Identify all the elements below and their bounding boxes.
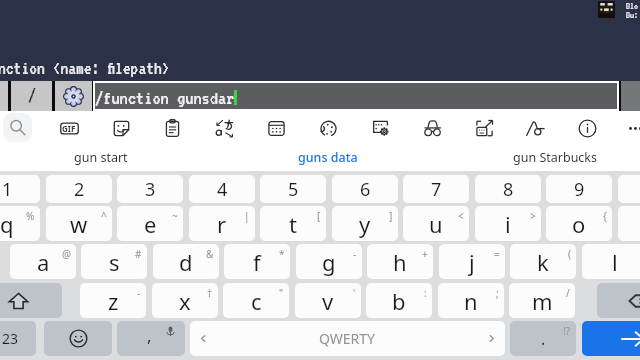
button[interactable]: Info <box>572 113 602 143</box>
button[interactable]: d <box>153 244 219 279</box>
button[interactable]: Translate <box>209 113 239 143</box>
button[interactable]: / <box>11 81 52 111</box>
button[interactable]: f <box>224 244 290 279</box>
button[interactable]: 4 <box>189 175 255 203</box>
button[interactable]: j <box>439 244 505 279</box>
button[interactable]: Settings <box>365 113 395 143</box>
staticText: s <box>109 247 120 277</box>
button[interactable]: o <box>546 206 612 241</box>
button[interactable]: Stickers <box>106 113 136 143</box>
button[interactable]: 2 <box>46 175 112 203</box>
staticText: , <box>147 324 152 347</box>
staticText: k <box>537 247 549 277</box>
button[interactable]: s <box>81 244 147 279</box>
staticText: u <box>429 209 443 239</box>
button[interactable]: Clipboard <box>157 113 187 143</box>
staticText: t <box>289 209 297 239</box>
button[interactable]: Shift <box>0 283 62 318</box>
button[interactable]: Emoji <box>44 321 112 356</box>
button[interactable]: l <box>582 244 640 279</box>
button[interactable]: n <box>438 283 504 318</box>
button[interactable]: Resize keyboard <box>469 113 499 143</box>
staticText: . <box>541 328 546 350</box>
button[interactable]: gun start <box>1 144 201 170</box>
staticText: e <box>144 209 157 239</box>
button[interactable]: 0 <box>618 175 640 203</box>
staticText: 8 <box>503 177 514 202</box>
button[interactable]: 5 <box>260 175 326 203</box>
staticText: q <box>0 209 14 239</box>
button[interactable]: gun Starbucks <box>455 144 640 170</box>
staticText: & <box>206 247 214 261</box>
button[interactable]: m <box>509 283 575 318</box>
staticText: y <box>359 209 371 239</box>
staticText: 2 <box>74 177 85 202</box>
button[interactable]: t <box>260 206 326 241</box>
button[interactable]: z <box>80 283 146 318</box>
staticText: h <box>393 247 407 277</box>
button[interactable]: Enter <box>582 321 640 356</box>
button[interactable]: Themes <box>313 113 343 143</box>
button[interactable]: v <box>295 283 361 318</box>
button[interactable]: Handwriting <box>520 113 550 143</box>
button[interactable]: h <box>367 244 433 279</box>
button[interactable]: Space <box>190 321 505 356</box>
button[interactable]: GIF <box>54 113 84 143</box>
staticText: f <box>253 247 261 277</box>
button[interactable]: Symbols <box>0 321 36 356</box>
staticText: + <box>422 247 428 261</box>
button[interactable]: Search <box>3 113 32 142</box>
staticText: z <box>108 286 119 316</box>
staticText: " <box>279 286 284 300</box>
button[interactable]: r <box>189 206 255 241</box>
button[interactable]: Comma <box>117 321 185 356</box>
button[interactable]: y <box>332 206 398 241</box>
button[interactable]: 9 <box>546 175 612 203</box>
button[interactable]: k <box>510 244 576 279</box>
button[interactable]: u <box>403 206 469 241</box>
button[interactable]: p <box>618 206 640 241</box>
staticText: 9 <box>574 177 585 202</box>
button[interactable]: guns data <box>228 144 428 170</box>
staticText: | <box>244 209 250 223</box>
staticText: / <box>566 286 570 300</box>
staticText: a <box>37 247 50 277</box>
staticText: l <box>612 247 618 277</box>
button[interactable]: x <box>152 283 218 318</box>
button[interactable]: 8 <box>475 175 541 203</box>
button[interactable]: Suggestion item <box>55 81 92 111</box>
button[interactable]: 3 <box>117 175 183 203</box>
button[interactable]: q <box>0 206 40 241</box>
staticText: Blo <box>626 1 638 11</box>
button[interactable]: i <box>475 206 541 241</box>
button[interactable]: 6 <box>332 175 398 203</box>
staticText: gun start <box>74 149 128 166</box>
staticText: ' <box>353 286 356 300</box>
staticText: c <box>251 286 262 316</box>
button[interactable]: e <box>117 206 183 241</box>
staticText: QWERTY <box>319 329 376 348</box>
staticText: !? <box>563 324 571 338</box>
staticText: 6 <box>360 177 371 202</box>
staticText: i <box>505 209 511 239</box>
staticText: n <box>464 286 478 316</box>
button[interactable]: a <box>10 244 76 279</box>
button[interactable]: 7 <box>403 175 469 203</box>
button[interactable]: g <box>296 244 362 279</box>
button[interactable]: Number pad <box>261 113 291 143</box>
button[interactable]: Period <box>510 321 576 356</box>
button[interactable]: /function gunsdar <box>95 83 617 109</box>
button[interactable]: c <box>223 283 289 318</box>
button[interactable]: Incognito mode <box>417 113 447 143</box>
staticText: guns data <box>298 149 358 166</box>
staticText: gun Starbucks <box>513 149 598 166</box>
button[interactable]: w <box>46 206 112 241</box>
button[interactable]: More options <box>620 113 640 143</box>
button[interactable]: Backspace <box>597 283 640 318</box>
staticText: g <box>322 247 336 277</box>
button[interactable]: b <box>366 283 432 318</box>
staticText: * <box>279 247 285 261</box>
button[interactable]: 1 <box>0 175 40 203</box>
staticText: b <box>392 286 406 316</box>
staticText: 7 <box>431 177 442 202</box>
